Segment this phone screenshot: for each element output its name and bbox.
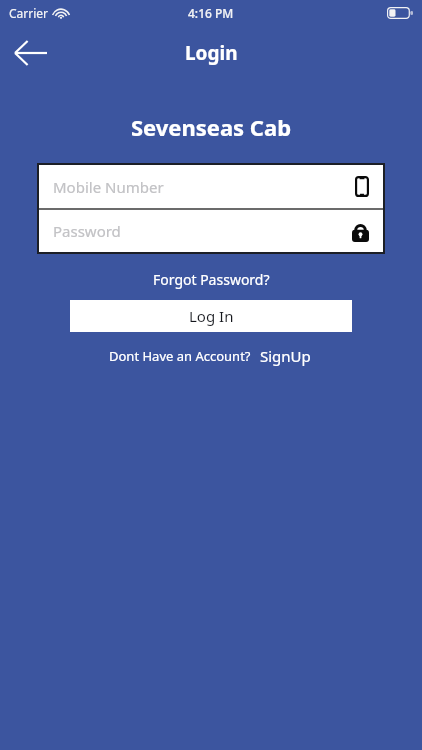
staticText: Log In [189, 306, 234, 326]
staticText: Mobile Number [53, 177, 164, 197]
staticText: Login [185, 40, 238, 66]
button[interactable]: Password [39, 210, 383, 252]
button[interactable]: Forgot Password? [145, 268, 278, 291]
button[interactable]: Mobile Number [39, 165, 383, 208]
staticText: 4:16 PM [188, 5, 234, 21]
button[interactable]: Back [8, 30, 54, 76]
staticText: Dont Have an Account? [109, 347, 251, 365]
button[interactable]: Log In [70, 300, 352, 332]
staticText: Carrier [9, 5, 49, 21]
staticText: Sevenseas Cab [0, 112, 422, 142]
staticText: Forgot Password? [153, 270, 270, 289]
button[interactable]: SignUp [258, 344, 313, 368]
staticText: SignUp [260, 346, 311, 366]
staticText: Password [53, 221, 121, 241]
